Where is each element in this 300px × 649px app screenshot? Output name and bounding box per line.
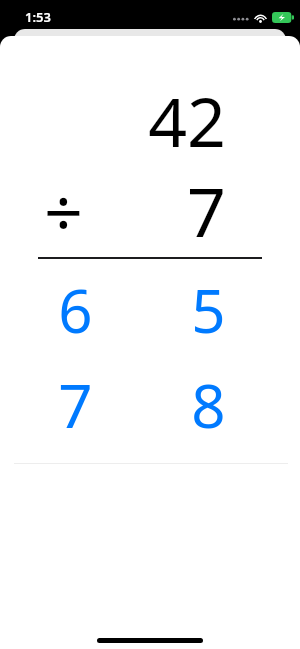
button[interactable]: 7: [20, 362, 130, 448]
staticText: 42: [148, 74, 226, 167]
other: Home: [0, 627, 300, 649]
button[interactable]: 6: [20, 267, 130, 353]
staticText: ÷: [44, 164, 83, 257]
staticText: 7: [58, 364, 93, 446]
button[interactable]: 8: [153, 362, 263, 448]
staticText: 6: [58, 269, 93, 351]
button[interactable]: 5: [153, 267, 263, 353]
staticText: 7: [187, 164, 226, 257]
staticText: 1:53: [25, 8, 51, 26]
staticText: 5: [191, 269, 226, 351]
staticText: 8: [191, 364, 226, 446]
